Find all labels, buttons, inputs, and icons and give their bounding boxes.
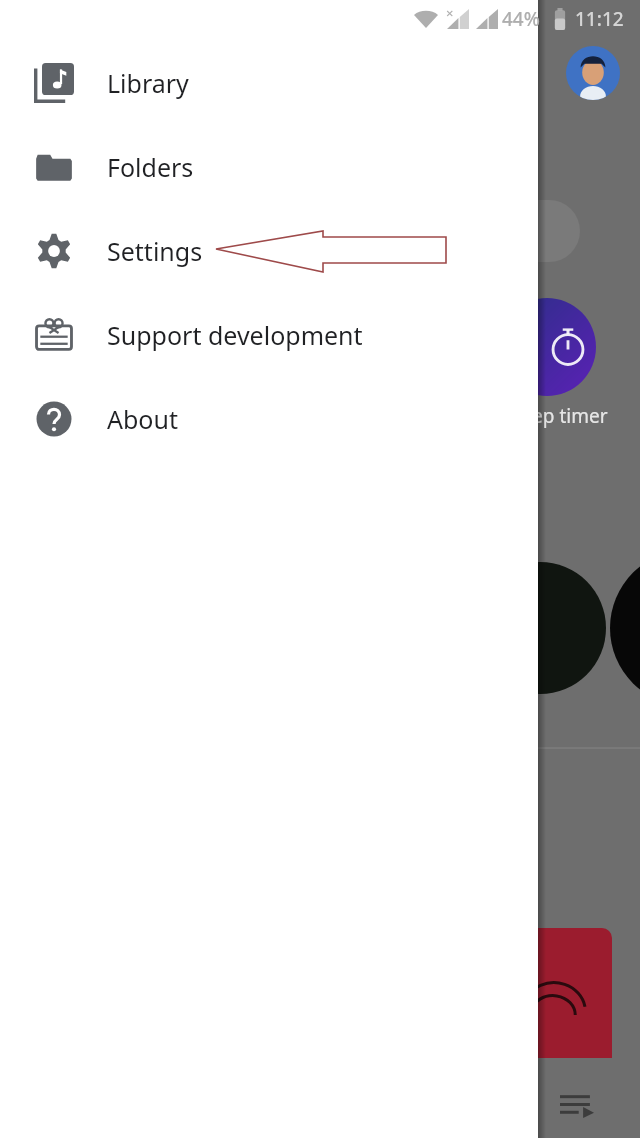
button[interactable]: Search — [478, 200, 580, 262]
button[interactable]: Queue — [560, 1092, 594, 1118]
button[interactable]: Account — [566, 46, 620, 100]
staticText: Support development — [107, 318, 363, 352]
button[interactable]: About — [0, 377, 538, 461]
staticText: About — [107, 402, 178, 436]
button[interactable]: Sleep timer — [498, 298, 596, 396]
staticText: Settings — [107, 234, 203, 268]
staticText: 44% — [502, 6, 540, 32]
staticText: Library — [107, 66, 189, 100]
button[interactable]: Folders — [0, 125, 538, 209]
button[interactable]: Library — [0, 41, 538, 125]
staticText: × — [446, 4, 454, 22]
staticText: Sleep timer — [506, 403, 608, 429]
staticText: 11:12 — [575, 6, 624, 32]
button[interactable]: Settings — [0, 209, 538, 293]
staticText: Folders — [107, 150, 194, 184]
button[interactable]: Support development — [0, 293, 538, 377]
